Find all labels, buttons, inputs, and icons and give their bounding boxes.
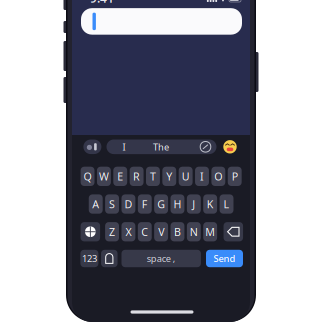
staticText: T bbox=[150, 169, 156, 183]
button[interactable]: Stickers bbox=[83, 140, 101, 154]
button[interactable]: W bbox=[97, 167, 111, 186]
staticText: D bbox=[124, 197, 132, 211]
staticText: V bbox=[158, 225, 164, 239]
staticText: The bbox=[153, 141, 169, 153]
staticText: H bbox=[173, 197, 181, 211]
button[interactable]: H bbox=[170, 194, 184, 214]
staticText: K bbox=[207, 197, 214, 211]
staticText: Y bbox=[166, 169, 172, 183]
staticText: L bbox=[223, 197, 229, 211]
button[interactable]: Z bbox=[105, 222, 119, 241]
staticText: E bbox=[117, 169, 123, 183]
button[interactable]: Message field bbox=[81, 8, 242, 35]
staticText: I bbox=[200, 169, 204, 183]
staticText: G bbox=[157, 197, 165, 211]
staticText: C bbox=[141, 225, 148, 239]
button[interactable]: The bbox=[142, 139, 179, 154]
button[interactable]: J bbox=[187, 194, 201, 214]
button[interactable]: Q bbox=[81, 167, 94, 186]
staticText: 123 bbox=[82, 252, 97, 265]
button[interactable]: Y bbox=[162, 167, 176, 186]
button[interactable]: T bbox=[146, 167, 160, 186]
staticText: F bbox=[142, 197, 148, 211]
staticText: U bbox=[182, 169, 190, 183]
staticText: space , bbox=[147, 252, 176, 265]
button[interactable]: O bbox=[211, 167, 225, 186]
staticText: W bbox=[99, 169, 109, 183]
button[interactable]: R bbox=[130, 167, 144, 186]
staticText: A bbox=[92, 197, 99, 211]
staticText: S bbox=[109, 197, 115, 211]
button[interactable]: X bbox=[121, 222, 135, 241]
staticText: B bbox=[174, 225, 181, 239]
button[interactable]: Emoji keyboard bbox=[223, 140, 237, 153]
button[interactable]: Dictate bbox=[101, 250, 117, 267]
staticText: N bbox=[190, 225, 198, 239]
button[interactable]: I bbox=[106, 139, 142, 154]
button[interactable]: Recents bbox=[190, 139, 220, 154]
button[interactable]: G bbox=[154, 194, 168, 214]
staticText: R bbox=[133, 169, 140, 183]
staticText: J bbox=[192, 197, 195, 211]
button[interactable]: V bbox=[154, 222, 168, 241]
staticText: O bbox=[214, 169, 222, 183]
button[interactable]: F bbox=[138, 194, 152, 214]
button[interactable]: E bbox=[113, 167, 127, 186]
button[interactable]: L bbox=[220, 194, 233, 214]
button[interactable]: D bbox=[121, 194, 135, 214]
button[interactable]: 123 bbox=[80, 250, 98, 267]
button[interactable]: M bbox=[203, 222, 217, 241]
button[interactable]: K bbox=[203, 194, 217, 214]
staticText: Z bbox=[109, 225, 115, 239]
staticText: Send bbox=[213, 252, 235, 265]
staticText: X bbox=[125, 225, 131, 239]
button[interactable]: Send bbox=[206, 250, 243, 267]
button[interactable]: B bbox=[170, 222, 184, 241]
button[interactable]: I bbox=[195, 167, 209, 186]
staticText: P bbox=[232, 169, 238, 183]
button[interactable]: N bbox=[187, 222, 201, 241]
button[interactable]: C bbox=[138, 222, 152, 241]
button[interactable]: Shift bbox=[81, 222, 100, 241]
staticText: 9:41 bbox=[90, 0, 114, 6]
staticText: I bbox=[122, 141, 125, 153]
staticText: Q bbox=[83, 169, 91, 183]
button[interactable]: S bbox=[105, 194, 119, 214]
button[interactable]: Delete bbox=[224, 222, 243, 241]
button[interactable]: U bbox=[179, 167, 193, 186]
button[interactable]: P bbox=[228, 167, 242, 186]
button[interactable]: space , bbox=[121, 250, 201, 267]
staticText: M bbox=[205, 225, 215, 239]
button[interactable]: A bbox=[89, 194, 103, 214]
